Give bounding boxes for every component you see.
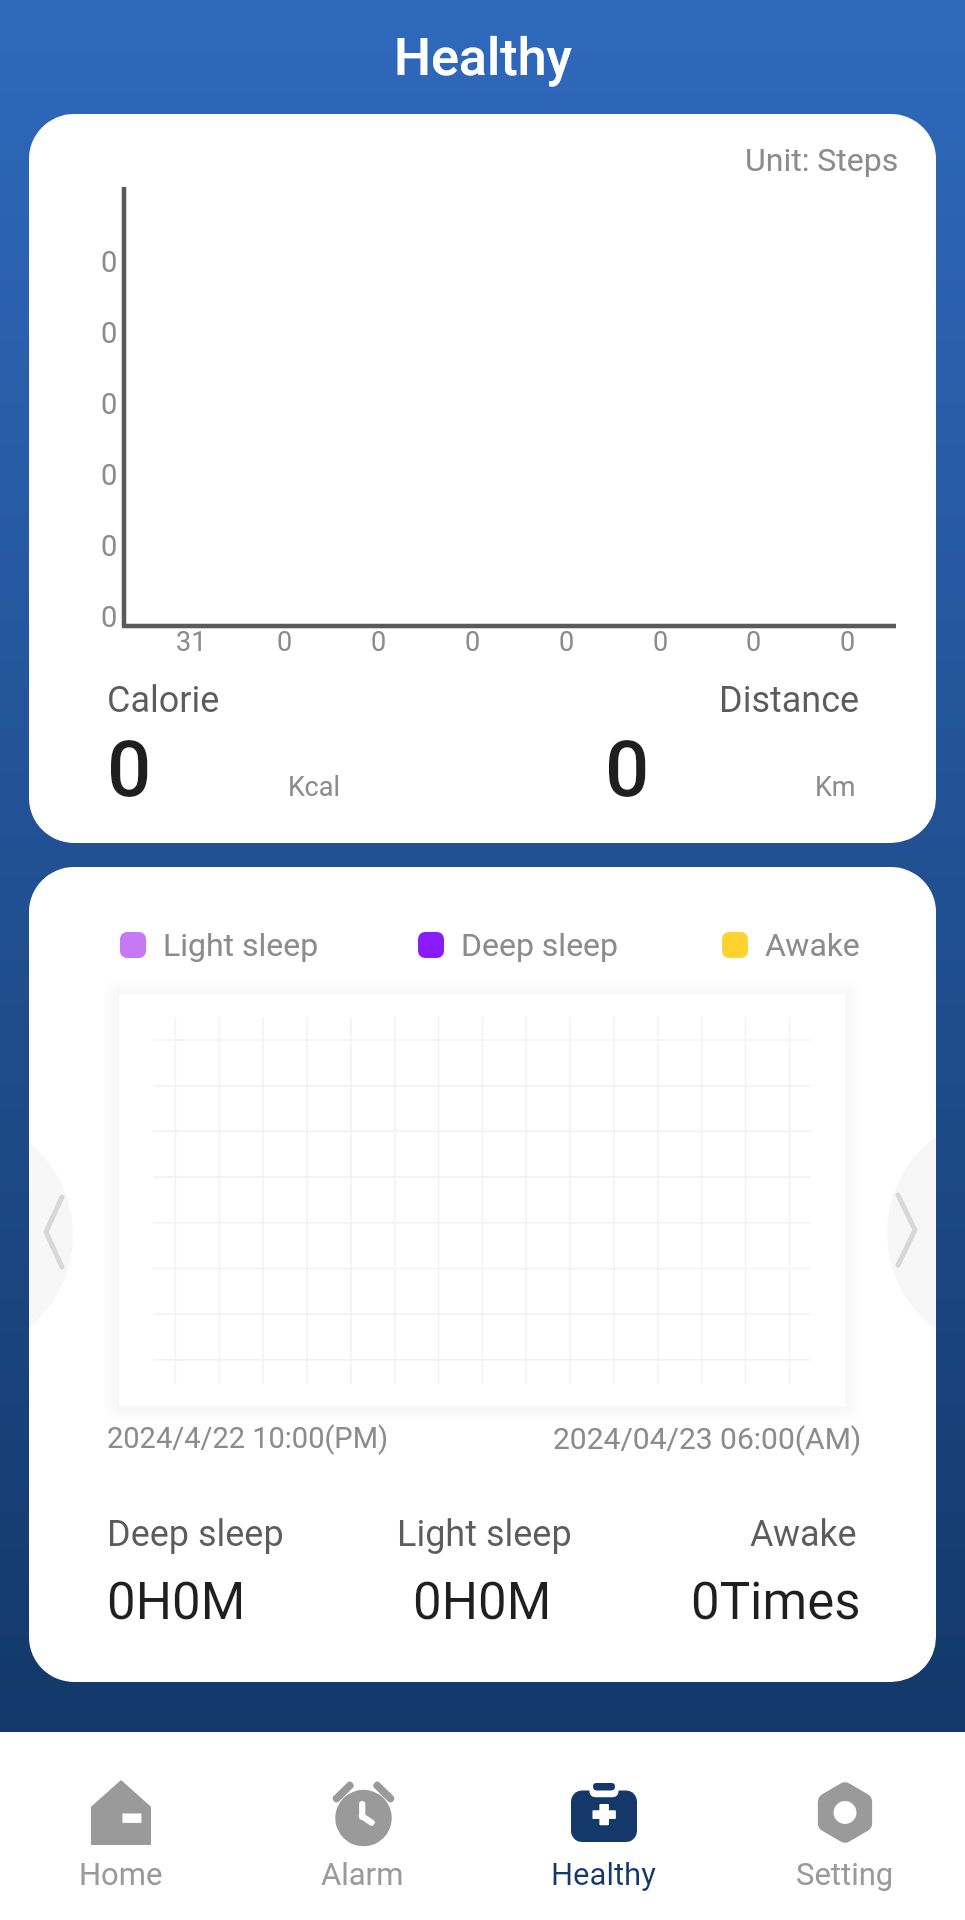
staticText: 0 (277, 626, 293, 658)
staticText: Calorie (107, 679, 220, 721)
staticText: Deep sleep (461, 926, 619, 964)
button[interactable]: Alarm (242, 1732, 483, 1920)
staticText: Deep sleep (107, 1513, 284, 1555)
staticText: 0 (101, 245, 118, 279)
staticText: 0 (101, 458, 118, 492)
staticText: 2024/4/22 10:00(PM) (107, 1421, 389, 1455)
staticText: 0 (101, 316, 118, 350)
staticText: 31 (176, 626, 207, 658)
staticText: 0 (107, 724, 152, 815)
staticText: 0 (465, 626, 481, 658)
staticText: Alarm (321, 1856, 404, 1892)
staticText: Kcal (288, 771, 340, 803)
button[interactable]: Next night (887, 1113, 936, 1353)
staticText: Healthy (394, 27, 572, 88)
staticText: 0 (101, 387, 118, 421)
staticText: 0H0M (107, 1572, 246, 1632)
staticText: Distance (719, 679, 860, 721)
button[interactable]: Setting (724, 1732, 965, 1920)
staticText: 0 (371, 626, 387, 658)
staticText: Home (79, 1856, 163, 1892)
staticText: Healthy (551, 1856, 656, 1892)
staticText: 0H0M (413, 1572, 552, 1632)
staticText: 0 (746, 626, 762, 658)
staticText: Awake (765, 926, 860, 964)
staticText: Light sleep (163, 926, 319, 964)
staticText: 0Times (691, 1572, 861, 1632)
staticText: 2024/04/23 06:00(AM) (553, 1421, 862, 1456)
staticText: Km (815, 771, 856, 803)
staticText: Awake (750, 1513, 857, 1555)
staticText: 0 (653, 626, 669, 658)
button[interactable]: Healthy (483, 1732, 724, 1920)
button[interactable]: Deep sleep (418, 926, 619, 964)
button[interactable]: Light sleep (120, 926, 319, 964)
staticText: 0 (559, 626, 575, 658)
staticText: 0 (605, 724, 650, 815)
staticText: Unit: Steps (745, 141, 899, 179)
button[interactable]: Awake (722, 926, 860, 964)
button[interactable]: Previous night (29, 1115, 73, 1355)
staticText: Light sleep (397, 1513, 572, 1555)
staticText: 0 (101, 529, 118, 563)
staticText: 0 (840, 626, 856, 658)
button[interactable]: Home (0, 1732, 242, 1920)
staticText: 0 (101, 600, 118, 634)
staticText: Setting (796, 1856, 894, 1892)
